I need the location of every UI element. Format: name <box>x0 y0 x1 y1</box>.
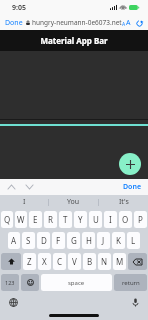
button[interactable]: Add <box>119 153 141 175</box>
staticText: R <box>48 214 53 225</box>
button[interactable]: F <box>52 232 65 249</box>
staticText: X <box>42 256 47 267</box>
staticText: S <box>26 235 31 246</box>
button[interactable]: E <box>29 211 42 228</box>
button[interactable]: X <box>38 253 51 270</box>
staticText: E <box>33 214 38 225</box>
button[interactable]: Z <box>23 253 36 270</box>
button[interactable]: Y <box>74 211 87 228</box>
button[interactable]: Backspace <box>128 253 147 270</box>
button[interactable]: C <box>53 253 66 270</box>
button[interactable]: J <box>97 232 110 249</box>
staticText: A <box>126 18 131 28</box>
button[interactable]: I <box>0 195 48 209</box>
staticText: A <box>11 235 17 246</box>
button[interactable]: 123 <box>1 274 19 291</box>
staticText: H <box>86 235 92 246</box>
button[interactable]: Previous field <box>6 182 16 192</box>
staticText: O <box>122 214 129 225</box>
button[interactable]: D <box>37 232 50 249</box>
staticText: N <box>101 256 108 267</box>
button[interactable]: H <box>82 232 95 249</box>
button[interactable]: A <box>8 232 20 249</box>
staticText: space <box>68 279 85 287</box>
staticText: U <box>93 214 99 225</box>
button[interactable]: S <box>22 232 35 249</box>
button[interactable]: space <box>41 274 112 291</box>
staticText: D <box>41 235 47 246</box>
staticText: Z <box>27 256 32 267</box>
button[interactable]: Dictate <box>129 296 141 308</box>
button[interactable]: Emoji <box>21 274 39 291</box>
staticText: Material App Bar <box>40 35 108 46</box>
button[interactable]: L <box>127 232 140 249</box>
button[interactable]: U <box>89 211 102 228</box>
button[interactable]: Change keyboard <box>7 296 19 308</box>
staticText: I <box>23 197 26 207</box>
staticText: K <box>116 235 121 246</box>
button[interactable]: K <box>112 232 125 249</box>
staticText: W <box>17 214 25 225</box>
staticText: T <box>63 214 68 225</box>
staticText: P <box>138 214 143 225</box>
staticText: G <box>71 235 77 246</box>
staticText: V <box>72 256 77 267</box>
button[interactable]: You <box>49 195 98 209</box>
staticText: A <box>122 21 126 28</box>
staticText: Q <box>4 214 11 225</box>
staticText: It's <box>119 197 129 207</box>
staticText: F <box>56 235 61 246</box>
button[interactable]: B <box>83 253 96 270</box>
button[interactable]: It's <box>99 195 148 209</box>
button[interactable]: N <box>98 253 111 270</box>
button[interactable]: Reload <box>136 20 143 27</box>
button[interactable]: R <box>44 211 57 228</box>
button[interactable]: O <box>119 211 132 228</box>
staticText: 123 <box>5 279 15 286</box>
button[interactable]: G <box>67 232 80 249</box>
staticText: L <box>131 235 136 246</box>
staticText: hungry-neumann-0e6073.net <box>32 18 122 27</box>
button[interactable]: Q <box>1 211 13 228</box>
staticText: Y <box>78 214 83 225</box>
button[interactable]: Done <box>123 182 142 192</box>
button[interactable]: Material App Bar <box>0 30 148 51</box>
button[interactable]: I <box>104 211 117 228</box>
staticText: M <box>116 256 124 267</box>
staticText: 9:05 <box>12 3 26 13</box>
staticText: You <box>67 197 80 207</box>
button[interactable]: M <box>113 253 126 270</box>
staticText: B <box>87 256 93 267</box>
button[interactable]: Shift <box>1 253 21 270</box>
staticText: Done <box>123 182 142 192</box>
staticText: C <box>57 256 63 267</box>
button[interactable]: Done <box>5 18 23 28</box>
button[interactable]: Next field <box>24 182 34 192</box>
button[interactable]: return <box>114 274 147 291</box>
button[interactable]: hungry-neumann-0e6073.net <box>26 18 122 27</box>
staticText: I <box>109 214 112 225</box>
button[interactable]: P <box>134 211 147 228</box>
staticText: return <box>122 279 140 287</box>
button[interactable]: V <box>68 253 81 270</box>
button[interactable]: T <box>59 211 72 228</box>
button[interactable]: Text size <box>122 18 131 28</box>
button[interactable]: W <box>15 211 27 228</box>
staticText: J <box>102 235 105 246</box>
